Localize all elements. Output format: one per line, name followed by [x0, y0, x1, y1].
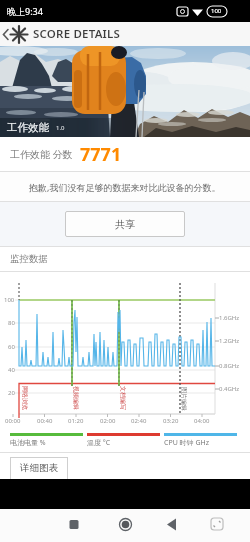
staticText: 40: [8, 366, 15, 374]
staticText: 03:20: [163, 417, 179, 425]
staticText: 00:40: [37, 417, 53, 425]
staticText: 温度 °C: [87, 438, 111, 448]
staticText: 抱歉,我们没有足够的数据来对比此设备的分数。: [29, 181, 221, 193]
staticText: 晚上9:34: [7, 5, 43, 17]
staticText: 0.4GHz: [219, 385, 240, 393]
staticText: 1.2GHz: [219, 337, 240, 345]
staticText: 网络浏览: [21, 386, 29, 410]
button[interactable]: [167, 509, 250, 542]
staticText: 1.6GHz: [219, 314, 240, 322]
button[interactable]: SCORE DETAILS: [0, 22, 250, 46]
staticText: 1.0: [56, 124, 65, 132]
staticText: 100: [4, 296, 15, 304]
staticText: 80: [8, 319, 15, 327]
button[interactable]: 详细图表: [10, 457, 68, 479]
button[interactable]: 共享: [65, 211, 185, 237]
staticText: 01:20: [68, 417, 84, 425]
staticText: 04:00: [194, 417, 210, 425]
staticText: 00:00: [5, 417, 21, 425]
staticText: 详细图表: [20, 462, 58, 474]
staticText: 监控数据: [10, 253, 48, 265]
staticText: 60: [8, 343, 15, 351]
staticText: 图片编辑: [180, 387, 188, 411]
staticText: CPU 时钟 GHz: [164, 438, 209, 448]
staticText: 20: [8, 389, 15, 397]
staticText: 文档编写: [119, 386, 127, 410]
staticText: 100: [211, 7, 222, 15]
staticText: 共享: [115, 218, 135, 231]
staticText: 0.8GHz: [219, 362, 240, 370]
staticText: 视频编辑: [72, 386, 80, 410]
staticText: SCORE DETAILS: [33, 26, 121, 42]
staticText: 工作效能: [7, 121, 49, 134]
staticText: 电池电量 %: [10, 438, 46, 448]
staticText: 02:40: [131, 417, 147, 425]
staticText: 02:00: [100, 417, 116, 425]
staticText: 工作效能 分数: [10, 147, 73, 161]
staticText: 7771: [80, 142, 122, 167]
button[interactable]: [84, 509, 167, 542]
button[interactable]: [0, 509, 84, 542]
